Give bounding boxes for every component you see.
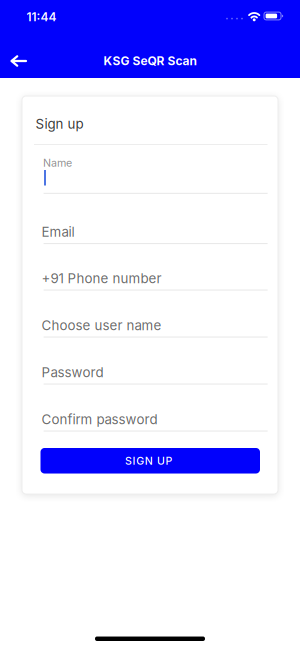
staticText: SIGN UP xyxy=(125,454,173,467)
button[interactable]: Back xyxy=(4,46,38,76)
button[interactable]: Choose user name xyxy=(44,317,268,338)
button[interactable]: SIGN UP xyxy=(40,448,260,473)
button[interactable]: Password xyxy=(44,364,268,385)
staticText: Confirm password xyxy=(42,411,158,427)
staticText: Sign up xyxy=(35,116,83,132)
staticText: Password xyxy=(42,364,104,380)
staticText: +91 Phone number xyxy=(42,270,162,286)
button[interactable]: Email xyxy=(44,224,268,245)
button[interactable]: Name xyxy=(44,151,268,194)
button[interactable]: Confirm password xyxy=(44,411,268,432)
staticText: 11:44 xyxy=(26,10,56,24)
staticText: KSG SeQR Scan xyxy=(103,54,196,68)
staticText: Email xyxy=(42,224,75,240)
button[interactable]: +91 Phone number xyxy=(44,270,268,291)
staticText: Name xyxy=(43,156,72,169)
staticText: Choose user name xyxy=(42,317,162,333)
